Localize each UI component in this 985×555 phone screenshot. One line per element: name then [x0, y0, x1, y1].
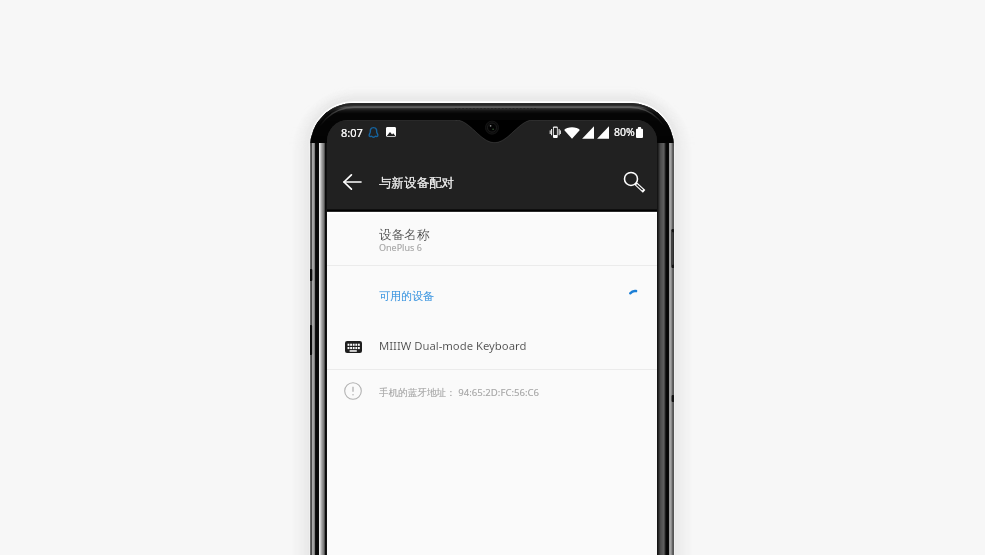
staticText: 80%	[614, 125, 635, 139]
button[interactable]: MIIIW Dual-mode Keyboard	[327, 325, 657, 369]
button[interactable]: 设备名称	[327, 214, 657, 265]
staticText: 设备名称	[379, 227, 430, 243]
staticText: 可用的设备	[379, 289, 434, 303]
staticText: 8:07	[341, 125, 363, 140]
staticText: 与新设备配对	[379, 175, 454, 191]
staticText: OnePlus 6	[379, 241, 422, 253]
staticText: 手机的蓝牙地址： 94:65:2D:FC:56:C6	[379, 386, 540, 399]
button[interactable]: Back	[336, 166, 368, 198]
button[interactable]: Search	[619, 167, 651, 199]
staticText: MIIIW Dual-mode Keyboard	[379, 338, 527, 353]
